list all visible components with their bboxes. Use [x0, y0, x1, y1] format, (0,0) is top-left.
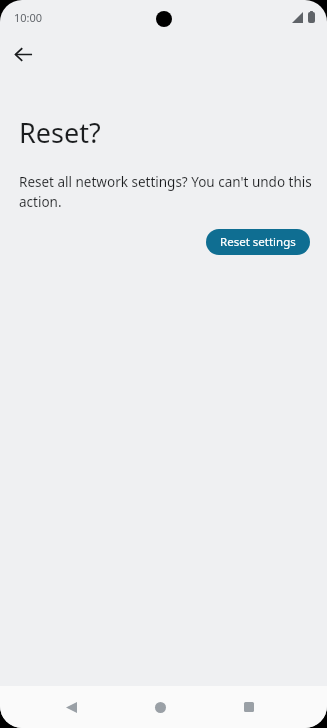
staticText: Reset all network settings? You can't un… [19, 173, 313, 211]
button[interactable]: Recent apps [233, 691, 265, 723]
staticText: 10:00 [14, 10, 43, 25]
button[interactable]: Back [6, 37, 40, 71]
button[interactable]: Home [144, 691, 176, 723]
button[interactable]: Back [55, 691, 87, 723]
staticText: Reset? [19, 114, 101, 151]
button[interactable]: Reset settings [206, 229, 310, 255]
staticText: Reset settings [220, 234, 296, 250]
